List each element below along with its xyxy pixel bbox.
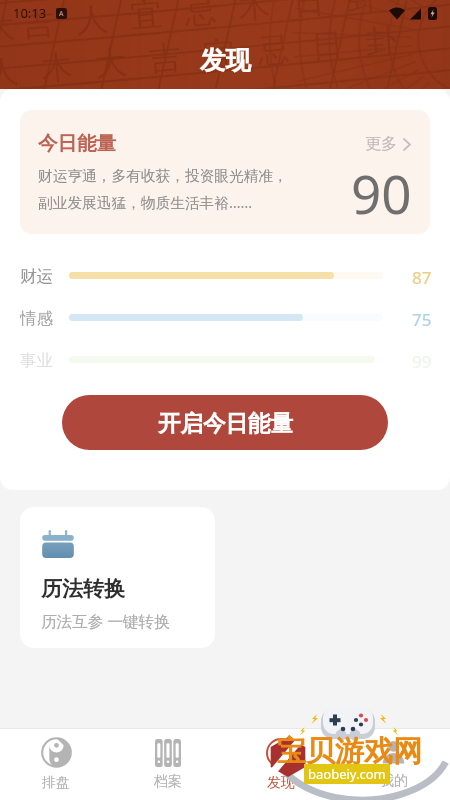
staticText: 开启今日能量 <box>158 409 293 437</box>
staticText: baobeiy.com <box>308 765 386 783</box>
button[interactable]: 排盘 <box>0 729 112 800</box>
staticText: 副业发展迅猛，物质生活丰裕…… <box>38 192 253 212</box>
staticText: 情感 <box>20 308 53 326</box>
staticText: 财运 <box>20 266 53 284</box>
staticText: 历法互参 一键转换 <box>41 610 170 631</box>
staticText: 75 <box>412 308 432 326</box>
staticText: 发现 <box>267 774 295 792</box>
button[interactable]: 开启今日能量 <box>62 395 388 450</box>
staticText: 宝贝游戏网 <box>277 733 422 770</box>
staticText: 历法转换 <box>41 576 125 602</box>
staticText: 99 <box>412 350 432 368</box>
staticText: 更多 <box>365 134 397 154</box>
button[interactable]: 今日能量 <box>20 110 430 234</box>
staticText: A <box>59 9 64 19</box>
staticText: 大吉 人 宜 忌 木 日 卦 <box>0 0 387 49</box>
staticText: 87 <box>412 266 432 284</box>
button[interactable]: 我的 <box>337 729 450 800</box>
staticText: 财运亨通，多有收获，投资眼光精准， <box>38 167 288 186</box>
staticText: 档案 <box>154 773 182 791</box>
staticText: 10:13 <box>13 4 47 22</box>
staticText: 今日能量 <box>38 131 116 156</box>
staticText: 人 木 大 吉 宜 忌 日 卦 <box>0 16 407 89</box>
button[interactable]: 历法转换 <box>20 507 215 648</box>
staticText: 发现 <box>200 44 251 76</box>
staticText: 我的 <box>380 772 408 790</box>
staticText: 90 <box>351 157 412 217</box>
button[interactable]: 发现 <box>224 729 337 800</box>
staticText: 事业 <box>20 350 53 368</box>
button[interactable]: 档案 <box>112 729 224 800</box>
staticText: 排盘 <box>42 774 70 792</box>
button[interactable]: 更多 <box>365 134 412 154</box>
